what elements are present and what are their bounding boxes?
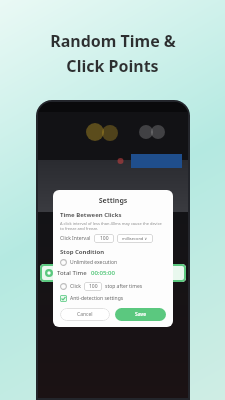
staticText: Anti-detection settings <box>70 295 124 302</box>
staticText: Settings <box>60 196 166 206</box>
staticText: Save <box>135 311 147 318</box>
staticText: stop after times <box>105 283 143 290</box>
staticText: Click Interval <box>60 235 91 242</box>
button[interactable]: 100 <box>94 234 114 243</box>
staticText: Click Points <box>66 55 159 77</box>
staticText: Time Between Clicks <box>60 211 122 219</box>
staticText: 100 <box>100 235 109 242</box>
staticText: Cancel <box>77 311 93 318</box>
staticText: A click interval of less than 40ms may c… <box>60 221 166 231</box>
button[interactable]: Total Time option selected <box>45 264 186 282</box>
button[interactable]: Anti-detection settings <box>60 295 166 302</box>
staticText: 100 <box>89 283 98 290</box>
button[interactable]: Cancel <box>60 308 110 321</box>
button[interactable]: Unlimited execution <box>60 259 166 266</box>
staticText: 00:05:00 <box>91 269 115 277</box>
button[interactable]: millisecond ∨ <box>117 234 153 243</box>
button[interactable]: Save <box>115 308 166 321</box>
staticText: Click <box>70 283 81 290</box>
staticText: Unlimited execution <box>70 259 118 266</box>
button[interactable]: 100 <box>84 282 102 291</box>
staticText: Stop Condition <box>60 248 105 256</box>
button[interactable]: Click <box>60 282 166 291</box>
staticText: millisecond ∨ <box>122 236 148 241</box>
staticText: Random Time & <box>50 30 176 52</box>
staticText: Total Time <box>57 269 87 277</box>
